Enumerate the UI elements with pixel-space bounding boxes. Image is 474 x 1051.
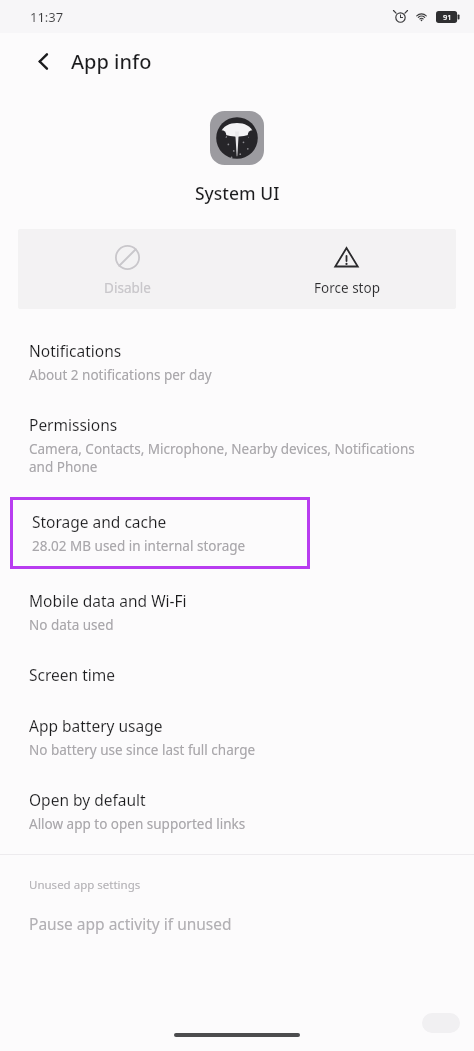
button[interactable]: Back [26,44,60,78]
button[interactable]: Disable [18,229,237,297]
staticText: System UI [195,181,280,205]
staticText: App info [71,48,152,75]
staticText: Storage and cache [32,511,167,532]
staticText: Permissions [29,414,118,435]
button[interactable]: Storage and cache [10,497,310,569]
button[interactable]: Screen time [0,649,474,700]
staticText: Allow app to open supported links [29,815,246,833]
staticText: Mobile data and Wi-Fi [29,590,187,611]
staticText: No battery use since last full charge [29,741,256,759]
button[interactable]: Pause app activity if unused [0,913,474,934]
staticText: Disable [104,279,151,297]
staticText: App battery usage [29,715,163,736]
button[interactable]: Open by default [0,774,474,848]
staticText: Pause app activity if unused [29,913,232,934]
staticText: Camera, Contacts, Microphone, Nearby dev… [29,440,440,476]
staticText: Screen time [29,664,115,685]
staticText: About 2 notifications per day [29,366,212,384]
button[interactable]: Mobile data and Wi-Fi [0,575,474,649]
staticText: No data used [29,616,114,634]
button[interactable]: Force stop [237,229,456,297]
staticText: 11:37 [30,8,64,26]
button[interactable]: Notifications [0,325,474,399]
staticText: Notifications [29,340,122,361]
button[interactable]: Permissions [0,399,474,491]
button[interactable]: App battery usage [0,700,474,774]
staticText: Open by default [29,789,146,810]
staticText: Unused app settings [29,877,141,893]
staticText: Force stop [314,279,380,297]
staticText: 28.02 MB used in internal storage [32,537,246,555]
staticText: 91 [443,12,452,22]
